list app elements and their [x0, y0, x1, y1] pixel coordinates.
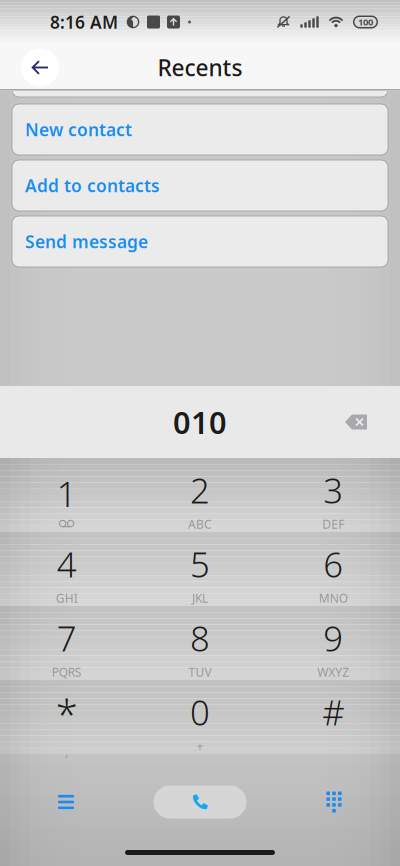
staticText: 8:16 AM	[50, 10, 118, 33]
button[interactable]: 2	[133, 458, 267, 532]
button[interactable]: Call log	[36, 780, 96, 824]
staticText: 8	[190, 615, 210, 661]
staticText: Recents	[157, 52, 242, 82]
button[interactable]: Keypad	[304, 780, 364, 824]
button[interactable]: Send message	[12, 216, 388, 267]
staticText: DEF	[322, 516, 344, 532]
staticText: Send message	[25, 230, 148, 253]
button[interactable]: 4	[0, 532, 133, 606]
staticText: JKL	[192, 590, 208, 606]
staticText: 7	[57, 615, 77, 661]
staticText: 6	[323, 541, 343, 587]
button[interactable]: 8	[133, 606, 267, 680]
staticText: ,	[65, 744, 68, 759]
staticText: Add to contacts	[25, 174, 160, 197]
staticText: 9	[323, 615, 343, 661]
staticText: +	[196, 738, 203, 754]
button[interactable]: New contact	[12, 104, 388, 155]
staticText: #	[322, 689, 344, 735]
staticText: PQRS	[52, 664, 82, 680]
staticText: New contact	[25, 118, 132, 141]
button[interactable]: 5	[133, 532, 267, 606]
button[interactable]: *	[0, 680, 133, 754]
staticText: 100	[358, 16, 373, 28]
button[interactable]: 7	[0, 606, 133, 680]
staticText: ABC	[188, 516, 212, 532]
button[interactable]: Add to contacts	[12, 160, 388, 211]
staticText: 5	[190, 541, 210, 587]
staticText: 4	[57, 541, 77, 587]
staticText: GHI	[56, 590, 78, 606]
staticText: TUV	[188, 664, 211, 680]
staticText: WXYZ	[317, 664, 349, 680]
staticText: 0	[190, 689, 210, 735]
staticText: MNO	[319, 590, 348, 606]
button[interactable]: 0	[133, 680, 267, 754]
button[interactable]: Back	[18, 45, 62, 89]
button[interactable]: 9	[267, 606, 400, 680]
staticText: 3	[323, 467, 343, 513]
staticText: *	[56, 687, 78, 741]
staticText: 010	[173, 402, 227, 442]
button[interactable]: Call	[153, 780, 246, 824]
button[interactable]: 3	[267, 458, 400, 532]
button[interactable]: 6	[267, 532, 400, 606]
button[interactable]: #	[267, 680, 400, 754]
button[interactable]: Backspace	[334, 400, 378, 444]
staticText: 1	[57, 470, 77, 516]
staticText: 2	[190, 467, 210, 513]
button[interactable]: 1	[0, 458, 133, 532]
